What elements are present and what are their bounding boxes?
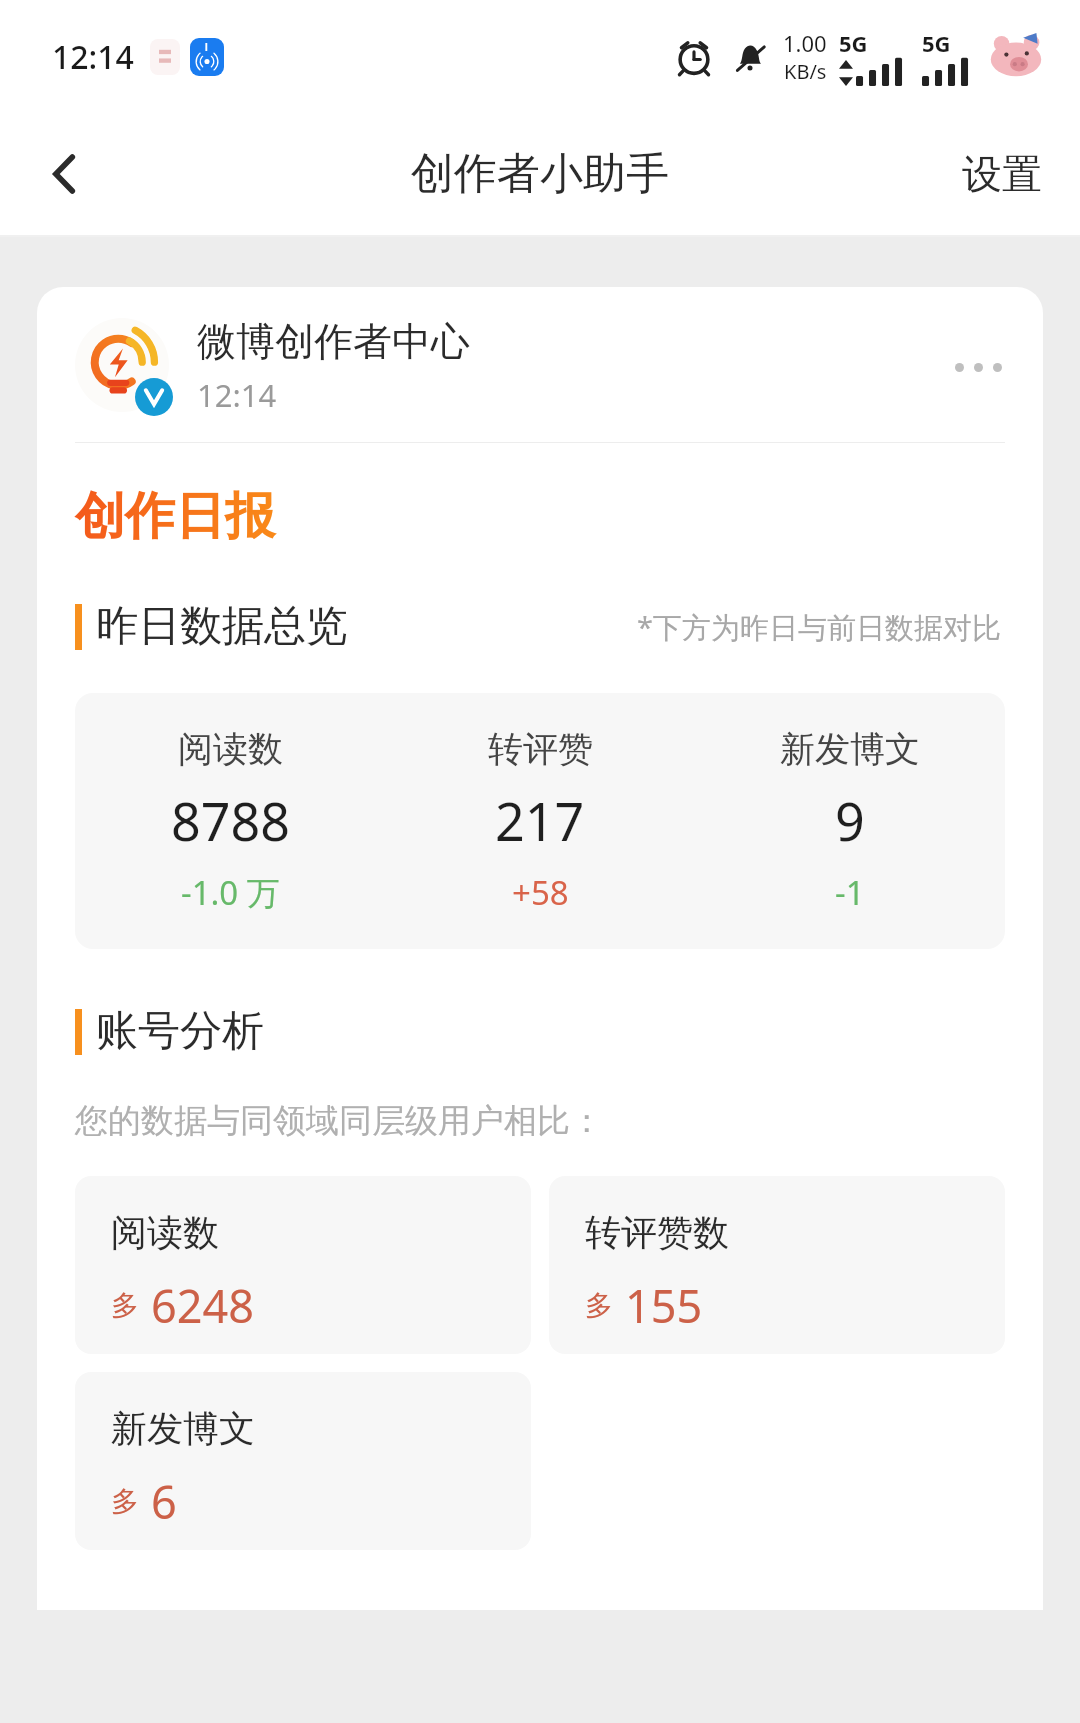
staticText: 微博创作者中心 xyxy=(197,317,470,366)
staticText: 多 xyxy=(111,1288,139,1323)
button[interactable]: 阅读数 xyxy=(75,727,385,915)
button[interactable]: 转评赞 xyxy=(385,727,695,915)
staticText: *下方为昨日与前日数据对比 xyxy=(637,607,1001,647)
staticText: 新发博文 xyxy=(780,727,920,771)
button[interactable]: 阅读数 xyxy=(75,1176,531,1354)
staticText: 创作者小助手 xyxy=(411,147,669,201)
staticText: 多 xyxy=(585,1288,613,1323)
staticText: 9 xyxy=(835,785,865,856)
staticText: 5G xyxy=(839,28,868,58)
staticText: KB/s xyxy=(784,58,827,85)
staticText: 1.00 xyxy=(783,28,827,58)
staticText: 6 xyxy=(151,1471,177,1532)
staticText: 设置 xyxy=(962,149,1042,199)
staticText: 155 xyxy=(625,1275,703,1336)
staticText: 6248 xyxy=(151,1275,254,1336)
staticText: -1 xyxy=(835,870,865,915)
staticText: 转评赞数 xyxy=(585,1210,729,1255)
staticText: 创作日报 xyxy=(75,485,275,548)
button[interactable]: 转评赞数 xyxy=(549,1176,1005,1354)
staticText: 昨日数据总览 xyxy=(96,600,348,653)
staticText: +58 xyxy=(512,870,569,915)
staticText: 5G xyxy=(922,28,951,58)
button[interactable]: 新发博文 xyxy=(75,1372,531,1550)
staticText: 阅读数 xyxy=(178,727,283,771)
staticText: 多 xyxy=(111,1484,139,1519)
staticText: 您的数据与同领域同层级用户相比： xyxy=(75,1100,603,1142)
staticText: 217 xyxy=(495,785,585,856)
button[interactable]: 新发博文 xyxy=(695,727,1005,915)
staticText: 账号分析 xyxy=(96,1005,264,1058)
staticText: -1.0 万 xyxy=(181,870,280,915)
button[interactable]: Back xyxy=(20,129,110,219)
staticText: 12:14 xyxy=(52,35,134,79)
staticText: 新发博文 xyxy=(111,1406,255,1451)
staticText: 阅读数 xyxy=(111,1210,219,1255)
button[interactable]: 设置 xyxy=(948,139,1056,209)
staticText: 12:14 xyxy=(197,374,277,416)
staticText: 8788 xyxy=(171,785,290,856)
staticText: 转评赞 xyxy=(488,727,593,771)
button[interactable]: More options xyxy=(943,332,1013,402)
button[interactable]: 微博创作者中心 xyxy=(75,317,1013,416)
